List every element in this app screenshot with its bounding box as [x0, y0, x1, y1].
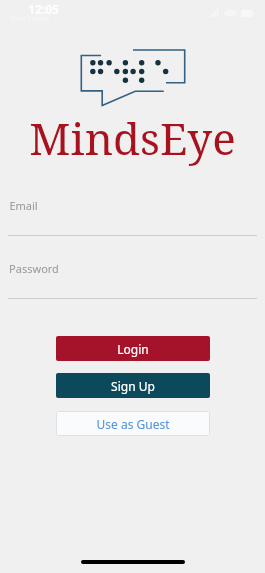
button[interactable]: Use as Guest — [56, 411, 210, 436]
staticText: Password — [9, 261, 59, 276]
button[interactable]: Email — [8, 198, 257, 236]
staticText: MindsEye — [29, 108, 236, 168]
button[interactable]: Login — [56, 336, 210, 361]
staticText: Use as Guest — [96, 416, 170, 432]
staticText: 12:05 — [28, 1, 59, 17]
staticText: Email — [9, 198, 38, 213]
other: MindsEye logo — [78, 48, 188, 106]
staticText: Sign Up — [111, 378, 155, 394]
button[interactable]: Sign Up — [56, 373, 210, 398]
staticText: Login — [117, 341, 149, 357]
other: Wi-Fi — [225, 9, 236, 17]
button[interactable]: Password — [8, 261, 257, 299]
